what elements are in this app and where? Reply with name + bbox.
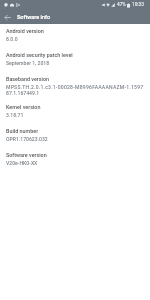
staticText: 47% — [117, 2, 126, 8]
button[interactable]: Navigate up — [0, 10, 14, 24]
staticText: 8.0.0 — [6, 36, 18, 42]
staticText: MPSS.TH.2.0.1.c3.1-00028-M8996FAAAANAZM-… — [6, 84, 144, 90]
staticText: 87.1.167449.1 — [6, 90, 40, 96]
staticText: OPR1.170623.032 — [6, 136, 48, 142]
staticText: Kernel version — [6, 104, 41, 110]
staticText: 10:33 — [132, 2, 144, 8]
staticText: Build number — [6, 128, 39, 134]
button[interactable]: Android security patch level — [0, 48, 150, 72]
staticText: 3.18.71 — [6, 112, 24, 118]
staticText: Android version — [6, 28, 44, 34]
staticText: V20e-HK0-XX — [6, 160, 38, 166]
button[interactable]: Build number — [0, 124, 150, 148]
button[interactable]: Kernel version — [0, 100, 150, 124]
button[interactable]: Software version — [0, 148, 150, 172]
staticText: Android security patch level — [6, 52, 73, 58]
staticText: September 1, 2018 — [6, 60, 50, 66]
staticText: Baseband version — [6, 76, 49, 82]
staticText: Software info — [17, 14, 51, 20]
button[interactable]: Android version — [0, 24, 150, 48]
button[interactable]: Baseband version — [0, 72, 150, 100]
staticText: Software version — [6, 152, 47, 158]
